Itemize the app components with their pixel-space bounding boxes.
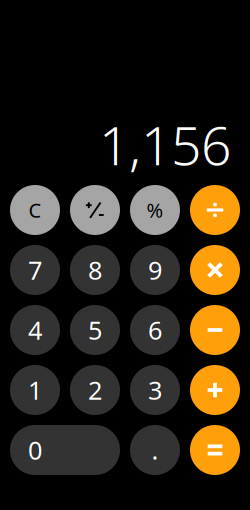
staticText: 0 <box>28 433 42 467</box>
staticText: 7 <box>28 253 42 287</box>
button[interactable]: C <box>10 185 60 235</box>
staticText: 1,156 <box>99 109 231 180</box>
button[interactable]: % <box>130 185 180 235</box>
button[interactable]: 4 <box>10 305 60 355</box>
button[interactable]: 2 <box>70 365 120 415</box>
button[interactable]: 9 <box>130 245 180 295</box>
button[interactable]: Toggle sign <box>70 185 120 235</box>
button[interactable]: 3 <box>130 365 180 415</box>
staticText: 9 <box>148 253 162 287</box>
staticText: 5 <box>88 313 102 347</box>
staticText: 1 <box>28 373 42 407</box>
button[interactable]: . <box>130 425 180 475</box>
staticText: C <box>28 197 41 223</box>
button[interactable]: 5 <box>70 305 120 355</box>
button[interactable]: Divide <box>190 185 240 235</box>
staticText: % <box>146 197 163 223</box>
staticText: 2 <box>88 373 102 407</box>
button[interactable]: Plus <box>190 365 240 415</box>
button[interactable]: 6 <box>130 305 180 355</box>
button[interactable]: Equals <box>190 425 240 475</box>
staticText: 8 <box>88 253 102 287</box>
button[interactable]: Multiply <box>190 245 240 295</box>
staticText: 6 <box>148 313 162 347</box>
button[interactable]: Minus <box>190 305 240 355</box>
button[interactable]: 1 <box>10 365 60 415</box>
button[interactable]: 7 <box>10 245 60 295</box>
staticText: 4 <box>28 313 42 347</box>
staticText: . <box>151 433 158 467</box>
button[interactable]: 0 <box>10 425 120 475</box>
button[interactable]: 8 <box>70 245 120 295</box>
staticText: 3 <box>148 373 162 407</box>
